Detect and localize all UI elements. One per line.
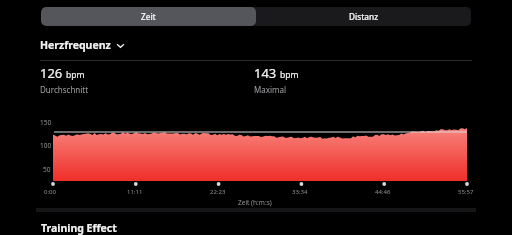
other: Expand bbox=[116, 41, 125, 50]
staticText: Distanz bbox=[349, 11, 379, 22]
staticText: 22:23 bbox=[210, 188, 226, 196]
staticText: Zeit (h:m:s) bbox=[238, 198, 272, 207]
staticText: 50 bbox=[43, 165, 51, 174]
staticText: 55:57 bbox=[458, 188, 474, 196]
staticText: 11:11 bbox=[127, 188, 143, 196]
button[interactable]: Zeit bbox=[41, 7, 256, 26]
staticText: 44:46 bbox=[375, 188, 391, 196]
staticText: 0:00 bbox=[44, 188, 56, 196]
staticText: Zeit bbox=[141, 11, 156, 22]
button[interactable]: Herzfrequenz bbox=[40, 38, 125, 52]
staticText: bpm bbox=[66, 69, 85, 81]
staticText: 143 bbox=[254, 64, 277, 82]
staticText: Maximal bbox=[254, 84, 287, 95]
staticText: bpm bbox=[280, 69, 299, 81]
staticText: Training Effect bbox=[41, 221, 117, 235]
staticText: Herzfrequenz bbox=[40, 38, 111, 52]
staticText: Durchschnitt bbox=[40, 84, 89, 95]
staticText: 100 bbox=[40, 141, 52, 150]
staticText: 126 bbox=[40, 64, 63, 82]
button[interactable]: Distanz bbox=[256, 7, 471, 26]
staticText: 33:34 bbox=[292, 188, 308, 196]
staticText: 150 bbox=[40, 118, 52, 127]
